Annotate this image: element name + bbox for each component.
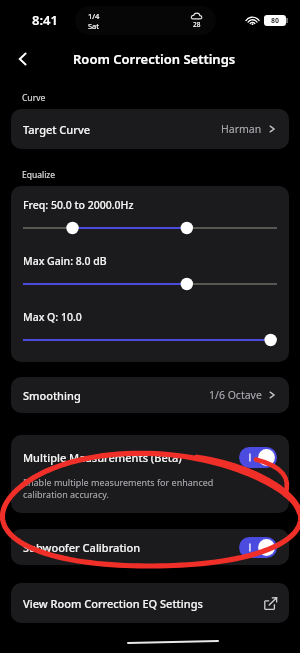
button[interactable]: Back — [6, 42, 40, 76]
staticText: 28 — [193, 20, 201, 29]
staticText: Harman — [221, 122, 262, 136]
staticText: 1/4 — [88, 11, 100, 21]
staticText: Smoothing — [23, 388, 81, 403]
button[interactable]: Multiple Measurements (Beta) — [11, 435, 289, 513]
button[interactable]: Slider — [23, 330, 277, 350]
button[interactable]: Smoothing — [11, 377, 289, 413]
staticText: Enable multiple measurements for enhance… — [23, 476, 214, 501]
button[interactable]: Target Curve — [11, 109, 289, 149]
staticText: Max Gain: 8.0 dB — [23, 254, 107, 268]
staticText: Curve — [22, 92, 46, 104]
staticText: Freq: 50.0 to 2000.0Hz — [23, 198, 134, 212]
button[interactable]: Slider — [23, 274, 277, 294]
staticText: Sat — [88, 21, 100, 31]
staticText: Subwoofer Calibration — [23, 540, 141, 555]
button[interactable]: Subwoofer Calibration — [11, 529, 289, 565]
staticText: 8:41 — [32, 11, 58, 29]
staticText: View Room Correction EQ Settings — [23, 596, 203, 611]
staticText: Room Correction Settings — [73, 50, 236, 68]
staticText: Max Q: 10.0 — [23, 310, 82, 324]
button[interactable]: View Room Correction EQ Settings — [11, 583, 289, 623]
staticText: Target Curve — [23, 122, 90, 137]
button[interactable]: Toggle — [239, 537, 277, 558]
button[interactable]: Slider — [23, 218, 277, 238]
button[interactable]: Toggle — [239, 447, 277, 468]
staticText: 1/6 Octave — [209, 388, 262, 402]
staticText: 80 — [271, 16, 280, 26]
staticText: Equalize — [22, 169, 56, 181]
staticText: Multiple Measurements (Beta) — [23, 450, 182, 465]
